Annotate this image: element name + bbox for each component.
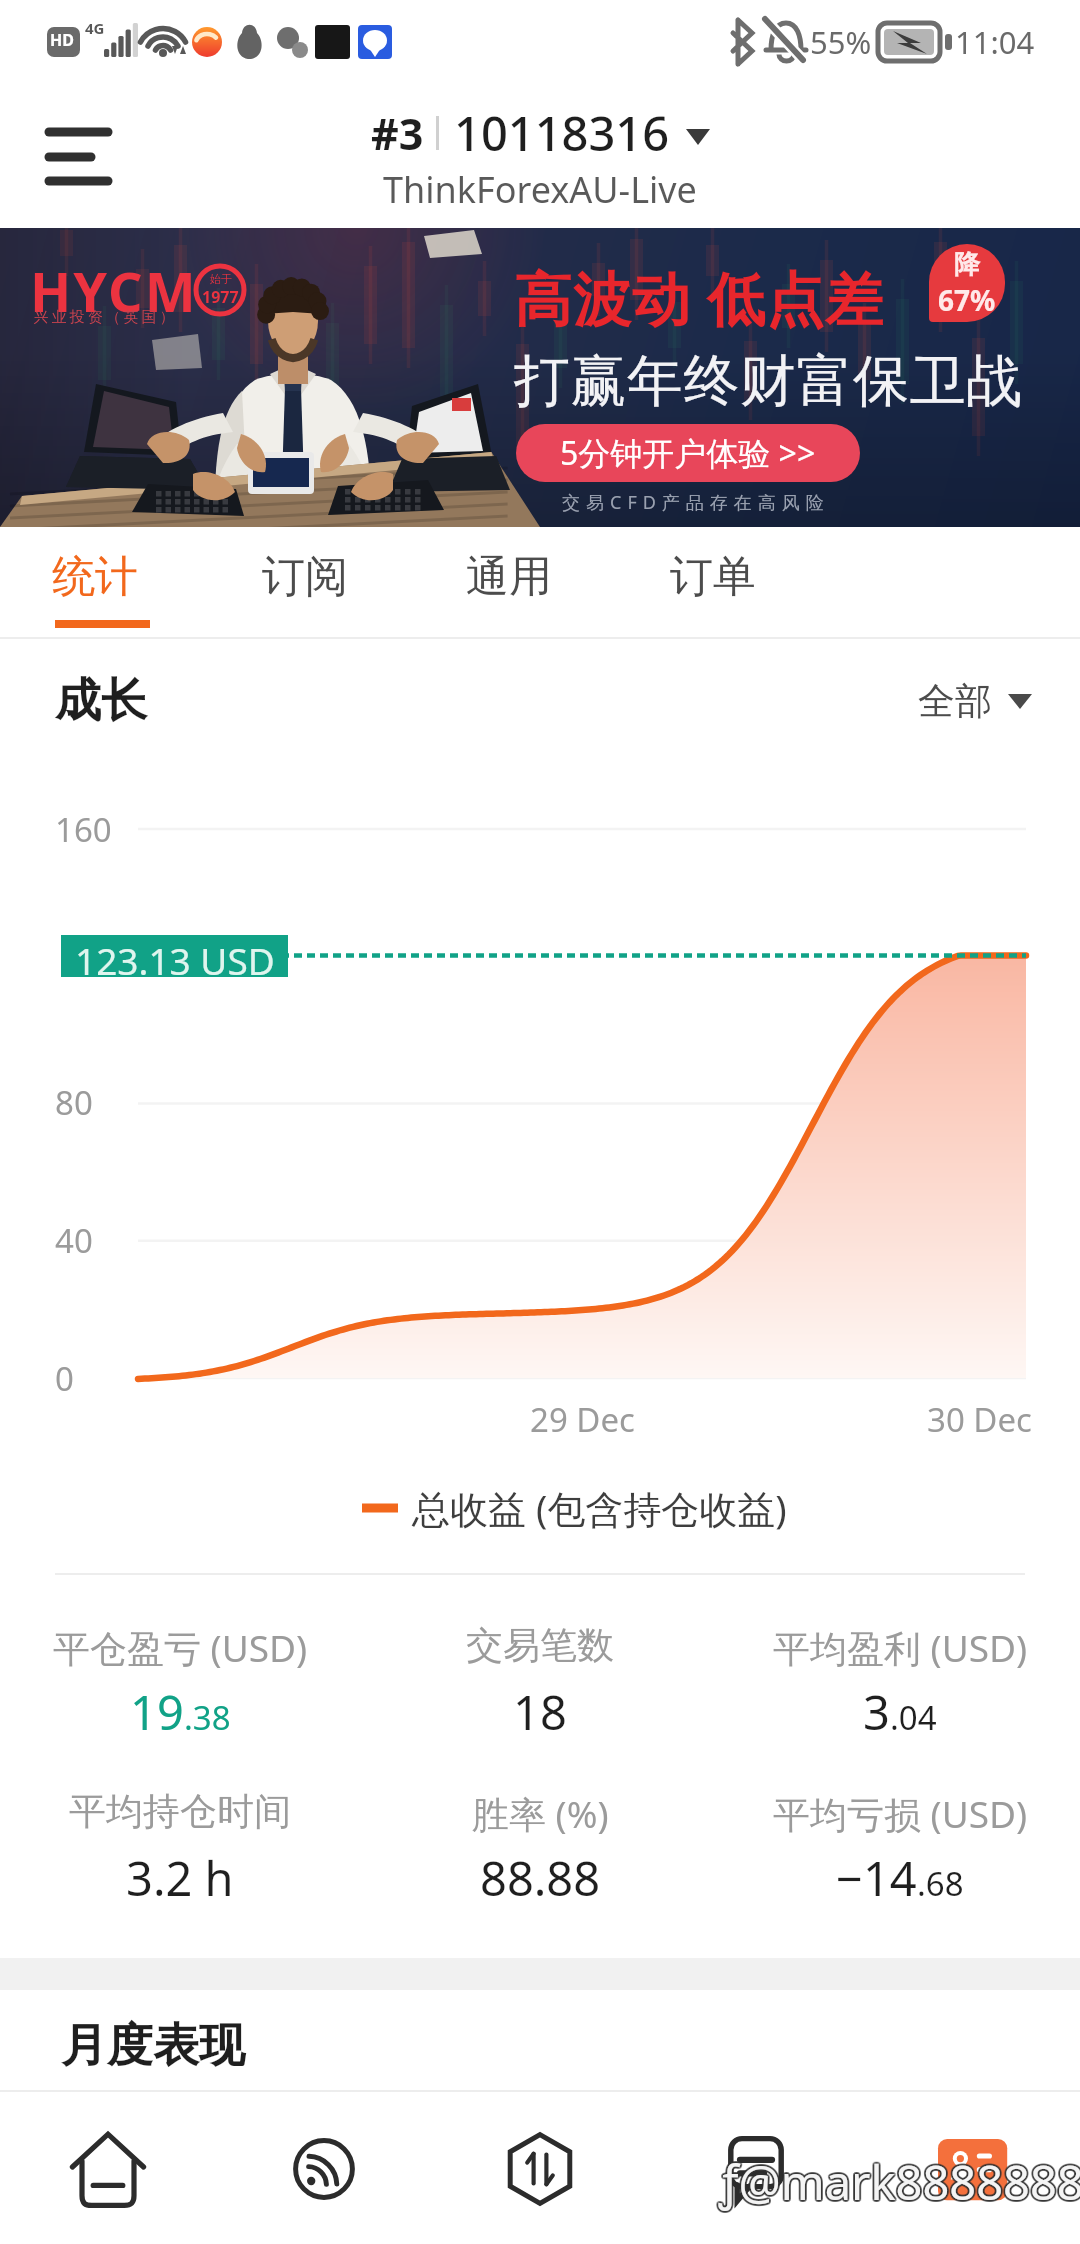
staticText: .04 bbox=[890, 1695, 937, 1740]
staticText: ƒ@mark88888888 bbox=[719, 2152, 1080, 2216]
button[interactable]: 平均亏损 (USD) bbox=[720, 1788, 1080, 1908]
staticText: ƒ@mark88888888 bbox=[717, 2150, 1080, 2214]
button[interactable]: 交易笔数 bbox=[360, 1622, 720, 1742]
button[interactable]: 订单 bbox=[670, 527, 770, 637]
staticText: 18 bbox=[513, 1680, 567, 1744]
staticText: 3 bbox=[863, 1680, 890, 1744]
staticText: 4G bbox=[85, 18, 105, 38]
staticText: 统计 bbox=[52, 550, 138, 604]
staticText: 订单 bbox=[670, 550, 756, 604]
staticText: 55% bbox=[810, 21, 872, 63]
staticText: 29 Dec bbox=[530, 1397, 635, 1442]
button[interactable]: Menu bbox=[22, 103, 134, 215]
staticText: 平仓盈亏 (USD) bbox=[53, 1622, 308, 1673]
staticText: ƒ@mark88888888 bbox=[719, 2151, 1080, 2215]
staticText: ƒ@mark88888888 bbox=[720, 2151, 1080, 2215]
staticText: 月度表现 bbox=[61, 2017, 245, 2075]
staticText: 0 bbox=[55, 1356, 74, 1401]
button[interactable]: 5分钟开户体验 >> bbox=[516, 424, 860, 482]
staticText: ƒ@mark88888888 bbox=[717, 2149, 1080, 2213]
staticText: ƒ@mark88888888 bbox=[721, 2149, 1080, 2213]
staticText: ƒ@mark88888888 bbox=[718, 2151, 1080, 2215]
button[interactable]: Signals bbox=[216, 2092, 432, 2244]
staticText: 19 bbox=[130, 1680, 184, 1744]
staticText: 胜率 (%) bbox=[472, 1788, 609, 1839]
staticText: .38 bbox=[184, 1695, 231, 1740]
staticText: 全部 bbox=[918, 678, 992, 725]
button[interactable]: Messages bbox=[648, 2092, 864, 2244]
staticText: 降 bbox=[954, 248, 980, 281]
staticText: 高波动 低点差 bbox=[514, 258, 885, 337]
button[interactable]: Trade bbox=[432, 2092, 648, 2244]
staticText: ƒ@mark88888888 bbox=[718, 2148, 1080, 2212]
staticText: #3 bbox=[371, 104, 424, 163]
staticText: 交易笔数 bbox=[466, 1622, 614, 1669]
staticText: 123.13 USD bbox=[75, 935, 275, 977]
staticText: 160 bbox=[55, 807, 112, 852]
staticText: 平均持仓时间 bbox=[69, 1788, 291, 1835]
staticText: ƒ@mark88888888 bbox=[720, 2148, 1080, 2212]
staticText: 平均盈利 (USD) bbox=[773, 1622, 1028, 1673]
staticText: 平均亏损 (USD) bbox=[773, 1788, 1028, 1839]
staticText: 兴业投资（英国） bbox=[32, 308, 176, 327]
button[interactable]: 全部 bbox=[918, 678, 1032, 725]
staticText: 订阅 bbox=[262, 550, 348, 604]
staticText: ƒ@mark88888888 bbox=[718, 2152, 1080, 2216]
button[interactable]: 胜率 (%) bbox=[360, 1788, 720, 1908]
staticText: ƒ@mark88888888 bbox=[719, 2148, 1080, 2212]
staticText: −14 bbox=[836, 1846, 917, 1910]
staticText: 交易CFD产品存在高风险 bbox=[562, 490, 830, 515]
staticText: ƒ@mark88888888 bbox=[717, 2151, 1080, 2215]
staticText: HD bbox=[50, 29, 74, 51]
staticText: 5分钟开户体验 >> bbox=[560, 431, 816, 475]
button[interactable]: 统计 bbox=[52, 527, 152, 637]
staticText: 80 bbox=[55, 1080, 93, 1125]
staticText: 67% bbox=[938, 281, 996, 319]
staticText: ƒ@mark88888888 bbox=[720, 2149, 1080, 2213]
button[interactable]: 平仓盈亏 (USD) bbox=[0, 1622, 360, 1742]
staticText: 30 Dec bbox=[927, 1397, 1032, 1442]
staticText: 1977 bbox=[202, 286, 239, 308]
staticText: ƒ@mark88888888 bbox=[720, 2150, 1080, 2214]
staticText: 始于 bbox=[210, 272, 232, 286]
staticText: 3.2 h bbox=[126, 1846, 234, 1910]
staticText: 11:04 bbox=[955, 21, 1035, 63]
button[interactable]: 平均持仓时间 bbox=[0, 1788, 360, 1908]
staticText: ƒ@mark88888888 bbox=[720, 2152, 1080, 2216]
staticText: ƒ@mark88888888 bbox=[721, 2151, 1080, 2215]
staticText: ThinkForexAU-Live bbox=[383, 165, 697, 214]
staticText: 40 bbox=[55, 1218, 93, 1263]
staticText: ƒ@mark88888888 bbox=[719, 2150, 1080, 2214]
staticText: 88.88 bbox=[480, 1846, 601, 1910]
staticText: .68 bbox=[917, 1861, 964, 1906]
button[interactable]: Home bbox=[0, 2092, 216, 2244]
staticText: 打赢年终财富保卫战 bbox=[514, 346, 1023, 417]
staticText: 总收益 (包含持仓收益) bbox=[412, 1482, 787, 1534]
button[interactable]: 通用 bbox=[466, 527, 566, 637]
staticText: ƒ@mark88888888 bbox=[719, 2149, 1080, 2213]
staticText: ƒ@mark88888888 bbox=[718, 2149, 1080, 2213]
staticText: ƒ@mark88888888 bbox=[721, 2150, 1080, 2214]
staticText: HYCM bbox=[30, 254, 198, 328]
staticText: ƒ@mark88888888 bbox=[718, 2150, 1080, 2214]
button[interactable]: 订阅 bbox=[262, 527, 362, 637]
staticText: 成长 bbox=[55, 672, 147, 730]
staticText: 10118316 bbox=[454, 101, 670, 165]
staticText: 通用 bbox=[466, 550, 552, 604]
button[interactable]: 平均盈利 (USD) bbox=[720, 1622, 1080, 1742]
button[interactable]: Profile bbox=[864, 2092, 1080, 2244]
